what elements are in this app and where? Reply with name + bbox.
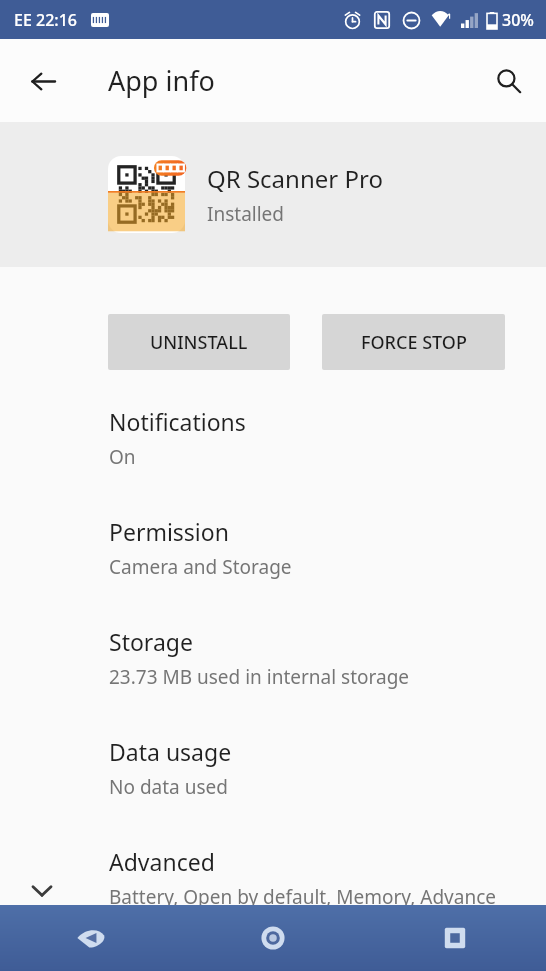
button[interactable]: Data usage bbox=[0, 718, 546, 828]
staticText: UNINSTALL bbox=[150, 330, 248, 355]
button[interactable]: Back bbox=[0, 905, 182, 971]
staticText: Permission bbox=[109, 516, 229, 547]
staticText: 23.73 MB used in internal storage bbox=[109, 664, 410, 690]
staticText: Camera and Storage bbox=[109, 554, 292, 580]
staticText: Data usage bbox=[109, 736, 232, 767]
button[interactable]: Back bbox=[18, 56, 68, 106]
staticText: App info bbox=[108, 62, 215, 99]
staticText: 30% bbox=[502, 9, 534, 31]
staticText: FORCE STOP bbox=[361, 330, 467, 355]
button[interactable]: Search bbox=[484, 56, 534, 106]
staticText: No data used bbox=[109, 774, 228, 800]
other: Expand advanced bbox=[27, 876, 57, 906]
button[interactable]: Permission bbox=[0, 498, 546, 608]
button[interactable]: Notifications bbox=[0, 388, 546, 498]
button[interactable]: UNINSTALL bbox=[108, 314, 290, 370]
staticText: QR Scanner Pro bbox=[207, 162, 383, 195]
button[interactable]: Recents bbox=[364, 905, 546, 971]
staticText: Advanced bbox=[109, 846, 215, 877]
button[interactable]: Home bbox=[182, 905, 364, 971]
staticText: Notifications bbox=[109, 406, 246, 437]
button[interactable]: FORCE STOP bbox=[322, 314, 505, 370]
button[interactable]: Expand advanced bbox=[0, 828, 546, 938]
staticText: Installed bbox=[207, 201, 285, 227]
button[interactable]: Storage bbox=[0, 608, 546, 718]
staticText: EE 22:16 bbox=[14, 9, 77, 31]
staticText: Battery, Open by default, Memory, Advanc… bbox=[109, 884, 496, 910]
staticText: Storage bbox=[109, 626, 193, 657]
staticText: On bbox=[109, 444, 136, 470]
